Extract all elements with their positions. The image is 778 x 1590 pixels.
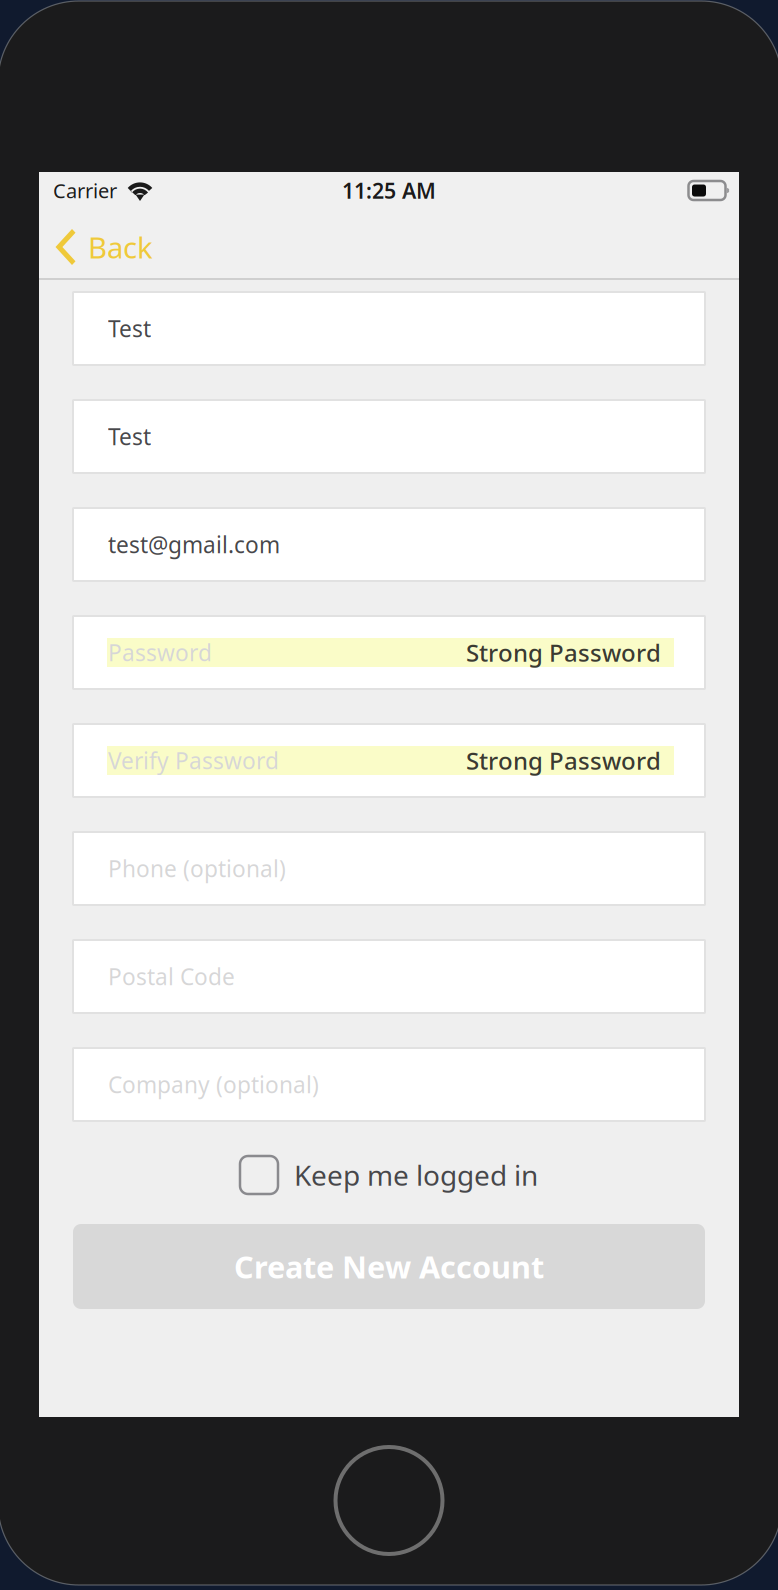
staticText: Test — [108, 313, 151, 343]
staticText: Test — [108, 421, 151, 451]
staticText: Company (optional) — [108, 1069, 319, 1099]
staticText: Strong Password — [466, 745, 661, 776]
staticText: test@gmail.com — [108, 529, 280, 559]
staticText: Postal Code — [108, 961, 235, 991]
staticText: 11:25 AM — [342, 176, 436, 205]
staticText: Password — [108, 637, 212, 667]
staticText: Keep me logged in — [294, 1156, 538, 1194]
button[interactable]: Back — [39, 216, 167, 278]
staticText: Verify Password — [108, 745, 279, 775]
staticText: Carrier — [53, 177, 117, 204]
staticText: Back — [88, 227, 153, 266]
staticText: Phone (optional) — [108, 853, 286, 883]
staticText: Create New Account — [234, 1246, 544, 1287]
button[interactable]: Create New Account — [73, 1224, 705, 1309]
button[interactable]: Keep me logged in — [240, 1153, 538, 1197]
staticText: Strong Password — [466, 637, 661, 668]
